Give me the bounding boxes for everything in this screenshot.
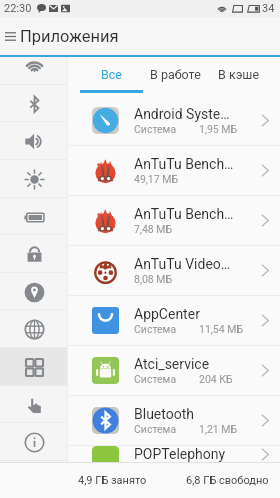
button[interactable]: Wi-Fi <box>0 57 68 85</box>
staticText: Atci_service <box>134 356 210 372</box>
staticText: Все <box>101 67 122 82</box>
staticText: AnTuTu Bench… <box>134 206 234 222</box>
button[interactable]: AnTuTu Video… <box>68 246 280 295</box>
staticText: Android Syste… <box>134 106 230 122</box>
staticText: 4,9 ГБ занято <box>78 474 147 487</box>
button[interactable]: Open Atci_service <box>250 346 280 395</box>
button[interactable]: Sound <box>0 122 68 160</box>
staticText: 49,17 МБ <box>134 173 179 185</box>
button[interactable]: Gestures <box>0 386 68 424</box>
staticText: В кэше <box>218 67 260 82</box>
button[interactable]: Menu <box>0 17 20 55</box>
staticText: 1,95 МБ <box>199 123 238 135</box>
staticText: Система <box>134 373 177 385</box>
button[interactable]: В работе <box>143 57 207 91</box>
button[interactable]: About <box>0 423 68 461</box>
button[interactable]: Bluetooth <box>0 85 68 123</box>
button[interactable]: Open AnTuTu Bench… <box>250 146 280 195</box>
staticText: Bluetooth <box>134 406 194 422</box>
button[interactable]: Open AppCenter <box>250 296 280 345</box>
button[interactable]: Security <box>0 235 68 273</box>
button[interactable]: Location <box>0 273 68 311</box>
button[interactable]: AnTuTu Bench… <box>68 146 280 195</box>
staticText: В работе <box>150 67 201 82</box>
button[interactable]: Open POPTelephony <box>250 446 280 462</box>
staticText: 204 КБ <box>199 373 233 385</box>
button[interactable]: Battery <box>0 198 68 236</box>
staticText: 1,21 МБ <box>199 423 238 435</box>
staticText: 7,48 МБ <box>134 223 173 235</box>
button[interactable]: Open Android Syste… <box>250 96 280 145</box>
button[interactable]: AnTuTu Bench… <box>68 196 280 245</box>
staticText: AnTuTu Bench… <box>134 156 234 172</box>
button[interactable]: Open Bluetooth <box>250 396 280 445</box>
staticText: 6,8 ГБ свободно <box>186 474 269 487</box>
button[interactable]: В кэше <box>207 57 271 91</box>
button[interactable]: Atci_service <box>68 346 280 395</box>
staticText: Приложения <box>20 27 119 46</box>
button[interactable]: Open AnTuTu Bench… <box>250 196 280 245</box>
staticText: 11,54 МБ <box>199 323 244 335</box>
staticText: AppCenter <box>134 306 200 322</box>
button[interactable]: Bluetooth <box>68 396 280 445</box>
button[interactable]: Applications <box>0 348 68 386</box>
staticText: AnTuTu Video… <box>134 256 231 272</box>
staticText: Система <box>134 123 177 135</box>
staticText: 8,08 МБ <box>134 273 173 285</box>
button[interactable]: AppCenter <box>68 296 280 345</box>
button[interactable]: Android Syste… <box>68 96 280 145</box>
button[interactable]: Все <box>80 57 143 91</box>
button[interactable]: Network <box>0 310 68 348</box>
staticText: 22:30 <box>4 2 32 15</box>
button[interactable]: Open AnTuTu Video… <box>250 246 280 295</box>
staticText: Система <box>134 423 177 435</box>
staticText: 34 <box>262 2 275 15</box>
button[interactable]: POPTelephony <box>68 446 280 462</box>
staticText: Система <box>134 323 177 335</box>
button[interactable]: Brightness <box>0 160 68 198</box>
staticText: POPTelephony <box>134 446 226 462</box>
